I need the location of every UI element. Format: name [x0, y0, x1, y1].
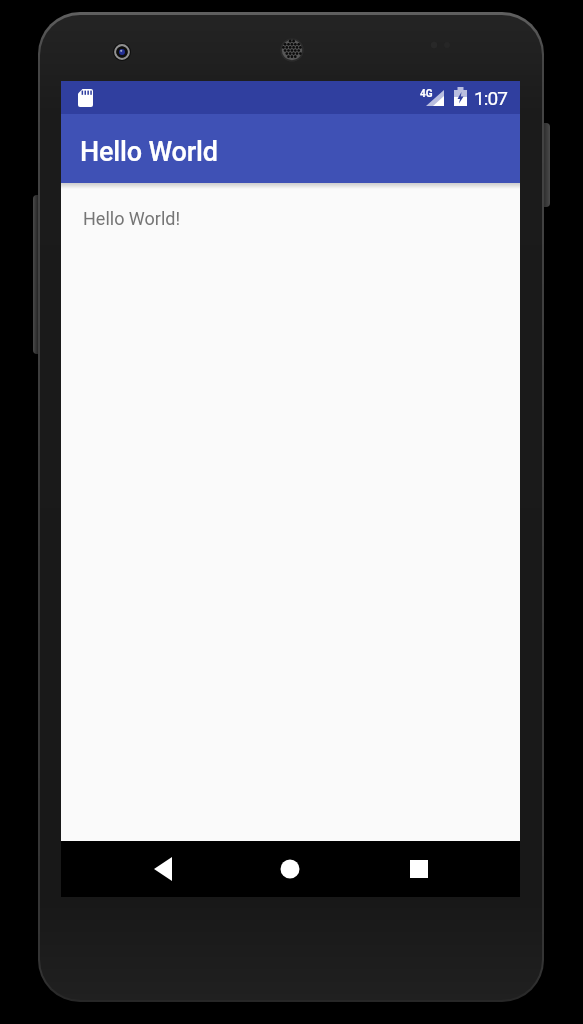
staticText: Hello World! — [83, 208, 181, 229]
staticText: 4G — [420, 88, 433, 100]
staticText: 1:07 — [474, 87, 508, 109]
button[interactable] — [266, 845, 314, 893]
staticText: Hello World — [80, 136, 218, 168]
button[interactable] — [139, 845, 187, 893]
button[interactable] — [395, 845, 443, 893]
